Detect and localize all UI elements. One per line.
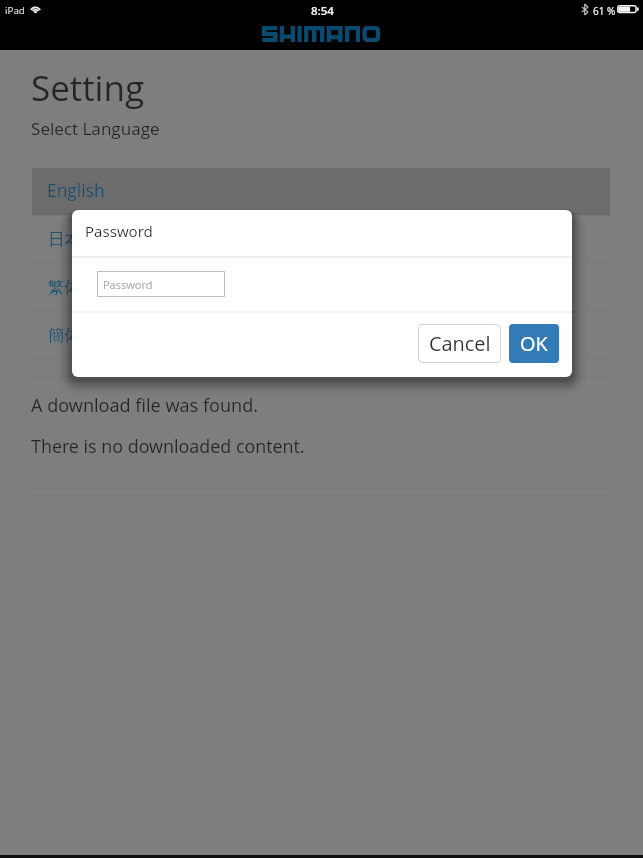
button[interactable]: Cancel	[418, 324, 501, 363]
staticText: 繁体中文	[48, 277, 114, 298]
staticText: 日本語	[48, 229, 98, 250]
staticText: Setting	[31, 64, 145, 112]
staticText: Cancel	[429, 330, 491, 357]
button[interactable]: Password	[97, 271, 225, 297]
staticText: There is no downloaded content.	[31, 434, 305, 458]
button[interactable]: OK	[509, 324, 559, 363]
staticText: Password	[85, 221, 153, 242]
button[interactable]: 日本語	[32, 216, 610, 263]
button[interactable]: English	[32, 168, 610, 215]
staticText: 8:54	[311, 3, 334, 19]
staticText: Password	[103, 277, 153, 292]
staticText: OK	[520, 330, 548, 357]
staticText: A download file was found.	[31, 393, 259, 418]
staticText: iPad	[5, 4, 25, 17]
staticText: 簡体中文	[48, 325, 114, 346]
staticText: English	[47, 178, 105, 202]
staticText: Select Language	[31, 117, 160, 140]
button[interactable]: 繁体中文	[32, 264, 610, 311]
other: SHIMANO	[262, 26, 380, 42]
button[interactable]: 簡体中文	[32, 312, 610, 359]
other: Battery 61 percent	[617, 5, 639, 14]
staticText: 61 %	[593, 4, 616, 18]
